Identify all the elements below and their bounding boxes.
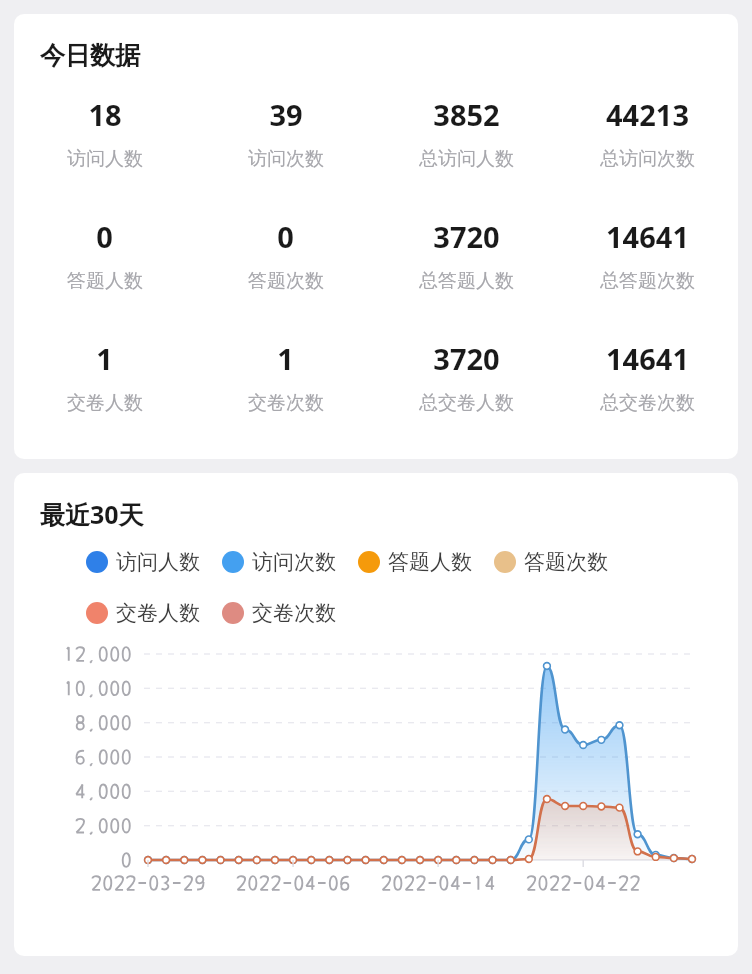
- button[interactable]: 14641: [557, 217, 738, 293]
- staticText: 14641: [606, 217, 689, 256]
- staticText: 0: [277, 217, 294, 256]
- staticText: 3720: [433, 217, 500, 256]
- staticText: 44213: [606, 95, 689, 134]
- staticText: 3852: [433, 95, 500, 134]
- staticText: 1: [96, 339, 113, 378]
- staticText: 答题人数: [388, 549, 472, 575]
- staticText: 访问次数: [248, 147, 324, 171]
- button[interactable]: 44213: [557, 95, 738, 171]
- button[interactable]: 1: [195, 339, 376, 415]
- button[interactable]: 访问次数: [222, 549, 336, 575]
- staticText: 交卷人数: [67, 391, 143, 415]
- button[interactable]: 交卷人数: [86, 600, 200, 626]
- staticText: 总答题次数: [600, 269, 695, 293]
- button[interactable]: 39: [195, 95, 376, 171]
- button[interactable]: 3720: [376, 217, 557, 293]
- button[interactable]: 1: [14, 339, 195, 415]
- staticText: 今日数据: [40, 40, 140, 71]
- staticText: 交卷次数: [248, 391, 324, 415]
- button[interactable]: 3852: [376, 95, 557, 171]
- staticText: 交卷次数: [252, 600, 336, 626]
- staticText: 18: [88, 95, 122, 134]
- staticText: 最近30天: [40, 497, 144, 531]
- button[interactable]: 0: [14, 217, 195, 293]
- button[interactable]: 0: [195, 217, 376, 293]
- other: 最近30天访问趋势折线图: [14, 640, 738, 912]
- staticText: 答题人数: [67, 269, 143, 293]
- staticText: 答题次数: [248, 269, 324, 293]
- staticText: 1: [277, 339, 294, 378]
- button[interactable]: 最近30天: [14, 473, 738, 956]
- staticText: 14641: [606, 339, 689, 378]
- staticText: 3720: [433, 339, 500, 378]
- staticText: 总交卷次数: [600, 391, 695, 415]
- staticText: 访问次数: [252, 549, 336, 575]
- staticText: 总交卷人数: [419, 391, 514, 415]
- button[interactable]: 交卷次数: [222, 600, 336, 626]
- staticText: 总答题人数: [419, 269, 514, 293]
- staticText: 0: [96, 217, 113, 256]
- staticText: 总访问人数: [419, 147, 514, 171]
- button[interactable]: 18: [14, 95, 195, 171]
- button[interactable]: 访问人数: [86, 549, 200, 575]
- button[interactable]: 今日数据: [14, 14, 738, 459]
- staticText: 访问人数: [116, 549, 200, 575]
- button[interactable]: 答题次数: [494, 549, 608, 575]
- staticText: 访问人数: [67, 147, 143, 171]
- staticText: 39: [269, 95, 303, 134]
- staticText: 交卷人数: [116, 600, 200, 626]
- button[interactable]: 答题人数: [358, 549, 472, 575]
- button[interactable]: 3720: [376, 339, 557, 415]
- staticText: 总访问次数: [600, 147, 695, 171]
- button[interactable]: 14641: [557, 339, 738, 415]
- staticText: 答题次数: [524, 549, 608, 575]
